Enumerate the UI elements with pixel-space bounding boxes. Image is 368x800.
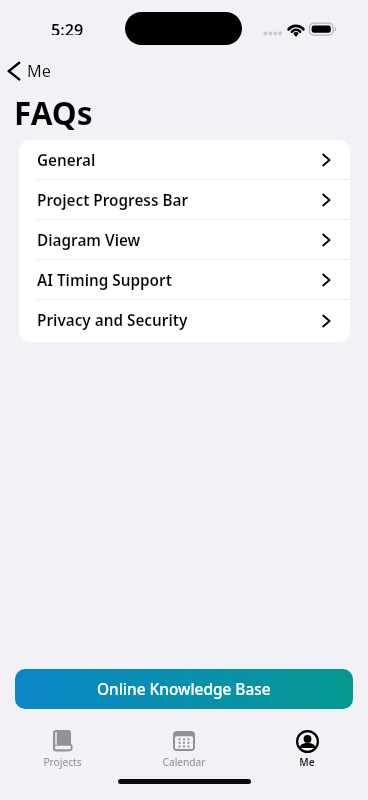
staticText: Privacy and Security — [37, 310, 188, 331]
button[interactable]: AI Timing Support — [19, 260, 350, 300]
staticText: Me — [299, 755, 315, 769]
button[interactable]: Project Progress Bar — [19, 180, 350, 220]
staticText: General — [37, 150, 96, 171]
staticText: Projects — [43, 755, 82, 769]
staticText: Diagram View — [37, 230, 141, 251]
button[interactable]: Back — [0, 58, 57, 86]
button[interactable]: Diagram View — [19, 220, 350, 260]
button[interactable]: Projects — [30, 726, 94, 770]
other: Me — [296, 730, 319, 753]
staticText: Online Knowledge Base — [97, 679, 271, 700]
staticText: Project Progress Bar — [37, 190, 189, 211]
staticText: AI Timing Support — [37, 270, 172, 291]
button[interactable]: Online Knowledge Base — [15, 669, 353, 709]
staticText: Calendar — [162, 755, 206, 769]
staticText: FAQs — [14, 91, 93, 134]
staticText: Me — [27, 60, 51, 82]
other: Projects — [53, 730, 71, 752]
other: Calendar — [173, 731, 195, 751]
button[interactable]: Privacy and Security — [19, 300, 350, 341]
button[interactable]: Me — [275, 726, 339, 770]
other: Back — [4, 58, 23, 86]
button[interactable]: Calendar — [152, 726, 216, 770]
button[interactable]: General — [19, 140, 350, 180]
staticText: 5:29 — [51, 19, 84, 35]
